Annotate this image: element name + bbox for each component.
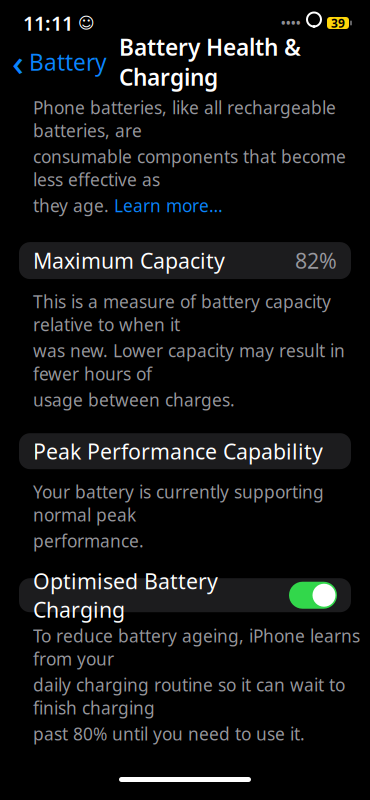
staticText: To reduce battery ageing, iPhone learns … (33, 624, 360, 670)
staticText: Peak Performance Capability (33, 437, 323, 465)
staticText: Maximum Capacity (33, 246, 225, 275)
staticText: Battery Health & Charging (119, 32, 301, 92)
staticText: 82% (295, 246, 337, 275)
staticText: daily charging routine so it can wait to… (33, 673, 345, 719)
button[interactable]: Learn more… (114, 194, 223, 217)
button[interactable]: Optimised Battery Charging (19, 578, 351, 612)
button[interactable]: Peak Performance Capability (19, 433, 351, 469)
staticText: •••• (281, 15, 301, 31)
staticText: 11:11 (23, 10, 73, 36)
staticText: This is a measure of battery capacity re… (33, 290, 331, 336)
button[interactable]: Maximum Capacity (19, 242, 351, 279)
staticText: was new. Lower capacity may result in fe… (33, 339, 345, 385)
button[interactable]: ‹ (0, 32, 107, 92)
staticText: Learn more… (114, 194, 223, 217)
staticText: ‹ (12, 38, 24, 86)
staticText: they age. (33, 194, 114, 217)
staticText: past 80% until you need to use it. (33, 722, 305, 745)
staticText: Phone batteries, like all rechargeable b… (33, 96, 336, 142)
staticText: consumable components that become less e… (33, 145, 346, 191)
staticText: Battery (29, 47, 107, 77)
staticText: Optimised Battery Charging (33, 567, 218, 624)
staticText: Your battery is currently supporting nor… (33, 480, 324, 526)
staticText: 39 (331, 15, 345, 31)
staticText: ☺ (78, 14, 95, 32)
staticText: usage between charges. (33, 388, 235, 411)
staticText: performance. (33, 529, 144, 552)
